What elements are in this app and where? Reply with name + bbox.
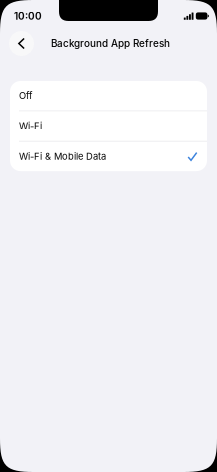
staticText: Background App Refresh [51, 37, 170, 49]
staticText: Off [19, 90, 32, 101]
button[interactable]: Wi-Fi & Mobile Data [10, 142, 207, 171]
staticText: Wi-Fi [19, 120, 42, 132]
button[interactable]: Back [9, 31, 34, 56]
staticText: Wi-Fi & Mobile Data [19, 151, 106, 162]
staticText: 10:00 [14, 10, 42, 22]
button[interactable]: Wi-Fi [10, 111, 207, 142]
button[interactable]: Off [10, 81, 207, 111]
